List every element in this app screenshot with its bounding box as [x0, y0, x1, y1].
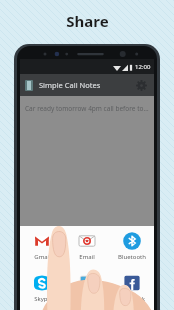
button[interactable]: Bluetooth — [109, 231, 154, 269]
button[interactable]: Simple Call Notes — [20, 74, 154, 96]
staticText: Share — [66, 11, 109, 31]
staticText: Skype — [34, 295, 51, 303]
button[interactable]: Email — [64, 231, 109, 269]
button[interactable]: Facebook — [109, 273, 154, 310]
staticText: Gmail — [34, 253, 51, 261]
button[interactable]: Settings — [133, 77, 149, 93]
staticText: Simple Call Notes — [39, 80, 101, 90]
staticText: Email — [79, 253, 95, 261]
staticText: Car ready tomorrow 4pm call before to co… — [25, 104, 150, 113]
staticText: Facebook — [118, 295, 145, 303]
button[interactable]: S Note — [64, 273, 109, 310]
staticText: 12:00 — [135, 63, 151, 71]
staticText: Bluetooth — [118, 253, 146, 261]
button[interactable]: Skype — [20, 273, 64, 310]
staticText: S Note — [80, 295, 94, 310]
button[interactable]: Gmail — [20, 231, 64, 269]
